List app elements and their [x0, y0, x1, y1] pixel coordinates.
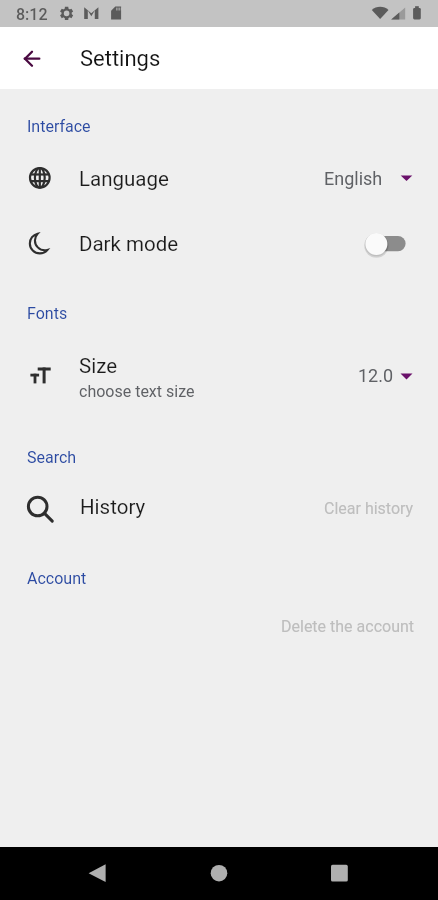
staticText: English — [324, 168, 383, 189]
staticText: Account — [27, 569, 87, 588]
staticText: History — [80, 495, 146, 519]
button[interactable]: Back — [0, 847, 146, 900]
staticText: Search — [27, 448, 77, 467]
button[interactable]: Size — [0, 350, 438, 402]
button[interactable]: History — [0, 480, 438, 532]
staticText: 12.0 — [358, 365, 394, 386]
button[interactable]: Dark mode switch, off — [362, 228, 410, 260]
button[interactable]: Dark mode — [0, 218, 438, 270]
staticText: Interface — [27, 117, 91, 136]
staticText: choose text size — [79, 382, 195, 401]
staticText: Delete the account — [281, 617, 415, 636]
staticText: Clear history — [324, 499, 414, 518]
button[interactable]: Navigate up — [14, 41, 50, 77]
staticText: 8:12 — [16, 5, 48, 24]
staticText: Dark mode — [79, 232, 179, 256]
staticText: Size — [79, 354, 118, 378]
button[interactable]: Language — [0, 152, 438, 204]
staticText: Language — [79, 167, 169, 191]
staticText: Settings — [80, 46, 161, 72]
button[interactable]: Home — [146, 847, 292, 900]
button[interactable]: Recent apps — [292, 847, 438, 900]
button[interactable]: Delete the account — [275, 610, 421, 642]
staticText: Fonts — [27, 304, 68, 323]
button[interactable]: Clear history — [318, 492, 420, 524]
